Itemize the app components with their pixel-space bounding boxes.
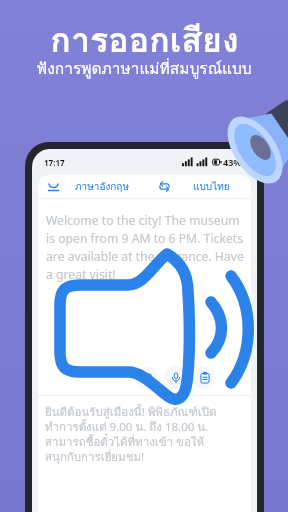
button[interactable]: Voice input: [164, 366, 187, 389]
button[interactable]: Clipboard: [193, 366, 216, 389]
staticText: ฟังการพูดภาษาแม่ที่สมบูรณ์แบบ: [36, 56, 252, 81]
button[interactable]: Image: [135, 366, 158, 389]
staticText: 17:17: [44, 157, 65, 168]
staticText: การออกเสียง: [50, 13, 239, 67]
button[interactable]: Swap languages: [152, 175, 176, 198]
button[interactable]: ภาษาอังกฤษ: [38, 175, 136, 198]
staticText: ภาษาอังกฤษ: [75, 179, 130, 195]
staticText: แบบไทย: [193, 179, 230, 195]
staticText: Welcome to the city! The museum is open …: [46, 212, 244, 283]
staticText: ยินดีต้อนรับสู่เมืองนี้! พิพิธภัณฑ์เปิดท…: [45, 403, 225, 466]
button[interactable]: แบบไทย: [193, 175, 251, 198]
staticText: 43%: [223, 156, 242, 168]
